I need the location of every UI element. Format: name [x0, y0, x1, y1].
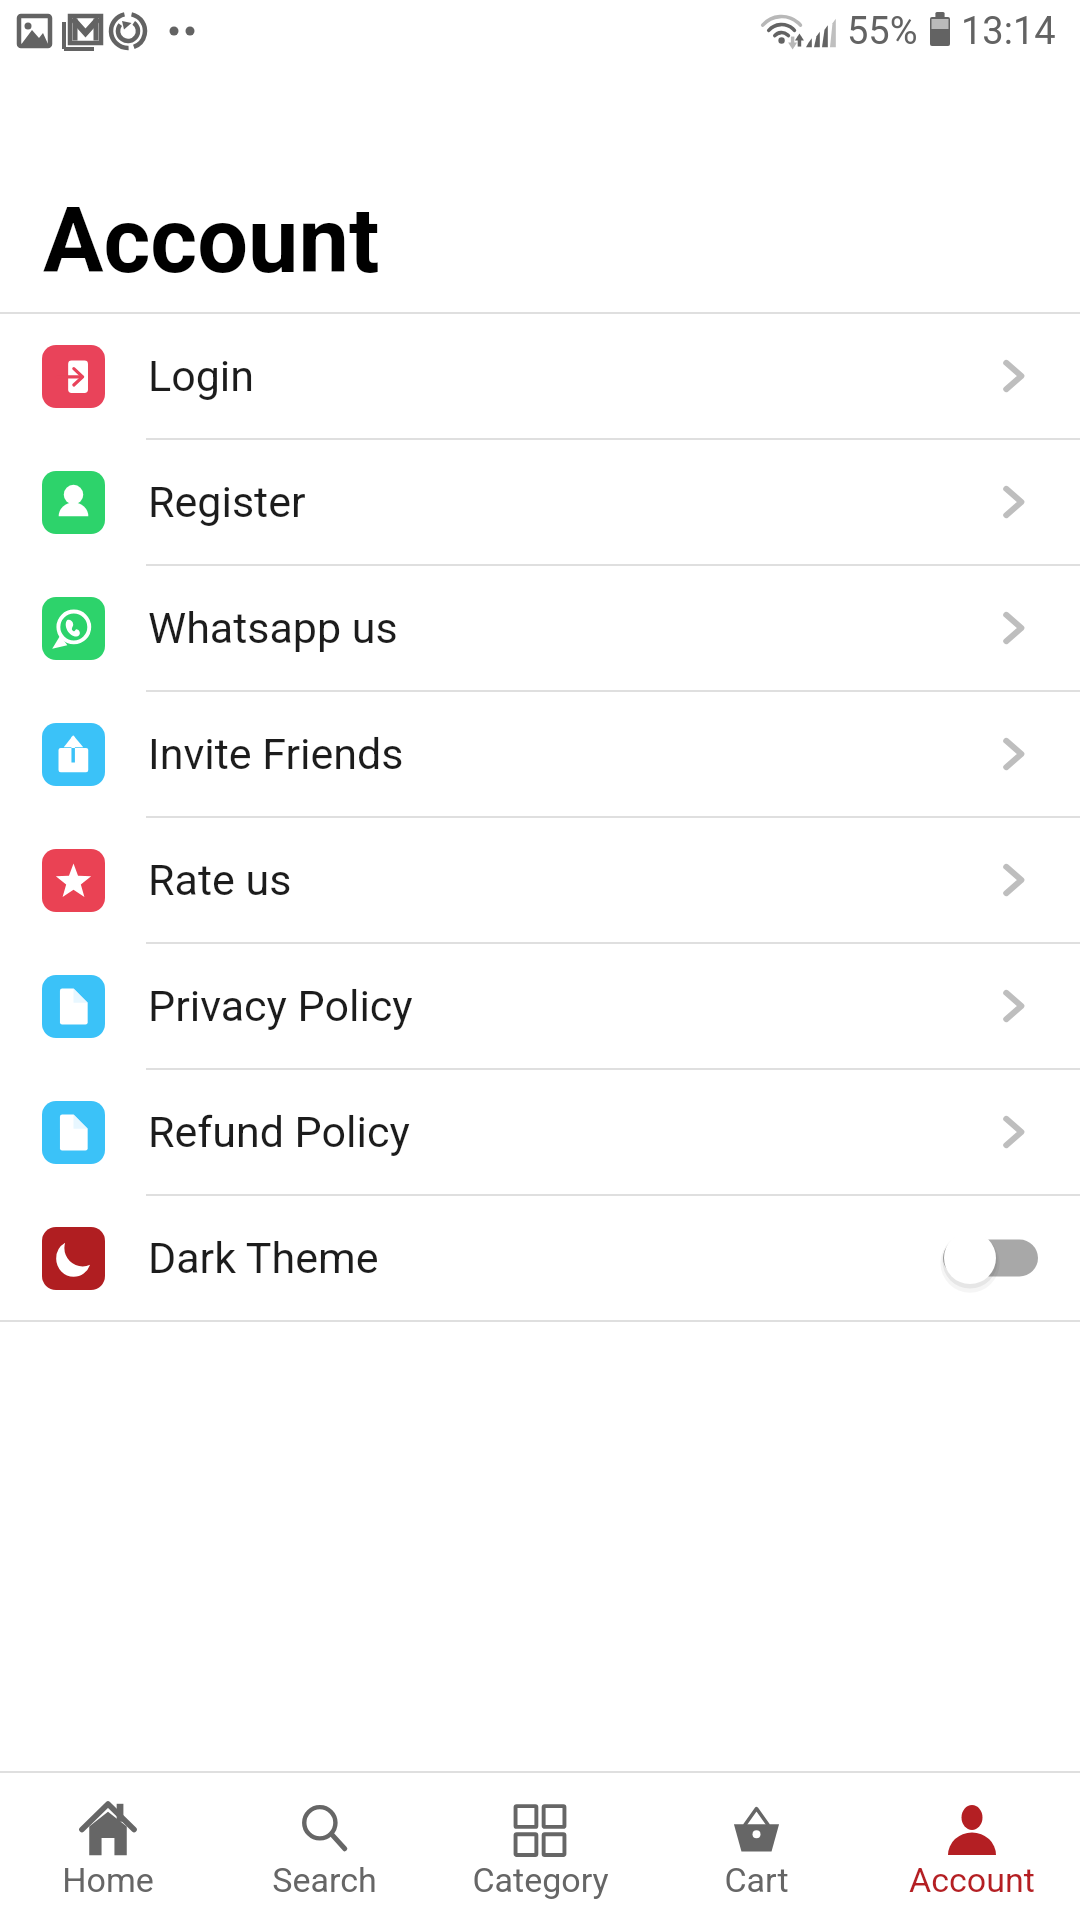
staticText: Search [272, 1860, 377, 1900]
staticText: Dark Theme [148, 1233, 379, 1283]
staticText: Rate us [148, 855, 292, 905]
button[interactable]: Dark Theme [0, 1196, 1080, 1320]
button[interactable]: Category [432, 1773, 648, 1920]
staticText: Home [62, 1860, 154, 1900]
button[interactable]: Refund Policy [0, 1070, 1080, 1194]
staticText: Account [43, 189, 380, 294]
staticText: 13:14 [961, 9, 1056, 54]
staticText: Category [472, 1860, 609, 1900]
staticText: Login [148, 351, 255, 401]
staticText: Register [148, 477, 306, 527]
staticText: Privacy Policy [148, 981, 413, 1031]
staticText: Refund Policy [148, 1107, 410, 1157]
staticText: Invite Friends [148, 729, 404, 779]
staticText: Cart [724, 1860, 789, 1900]
button[interactable]: Dark theme toggle [943, 1229, 1038, 1287]
button[interactable]: Login [0, 314, 1080, 438]
button[interactable]: Cart [648, 1773, 864, 1920]
staticText: Account [909, 1860, 1035, 1900]
button[interactable]: Privacy Policy [0, 944, 1080, 1068]
button[interactable]: Account [864, 1773, 1080, 1920]
button[interactable]: Invite Friends [0, 692, 1080, 816]
button[interactable]: Home [0, 1773, 216, 1920]
staticText: 55% [847, 9, 918, 54]
staticText: Whatsapp us [148, 603, 398, 653]
button[interactable]: Whatsapp us [0, 566, 1080, 690]
button[interactable]: Search [216, 1773, 432, 1920]
button[interactable]: Rate us [0, 818, 1080, 942]
button[interactable]: Register [0, 440, 1080, 564]
